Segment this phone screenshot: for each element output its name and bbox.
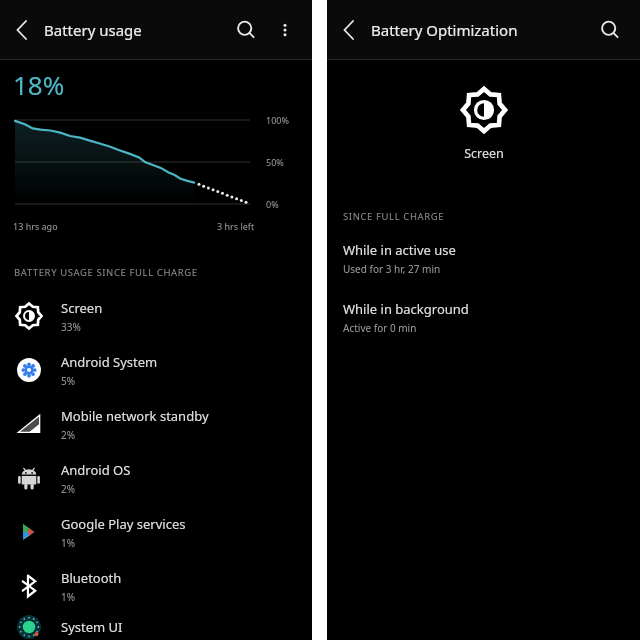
button[interactable]: System UI	[0, 613, 312, 640]
button[interactable]: Android OS	[0, 451, 312, 505]
staticText: 18%	[13, 67, 65, 102]
staticText: 13 hrs ago	[13, 220, 58, 232]
staticText: Battery usage	[44, 20, 142, 40]
staticText: Android OS	[61, 461, 131, 479]
staticText: Bluetooth	[61, 569, 122, 587]
staticText: Mobile network standby	[61, 407, 209, 425]
staticText: 1%	[61, 536, 76, 550]
staticText: 3 hrs left	[217, 220, 255, 232]
button[interactable]: While in active use	[327, 239, 640, 278]
staticText: Battery Optimization	[371, 20, 518, 40]
button[interactable]: Google Play services	[0, 505, 312, 559]
staticText: BATTERY USAGE SINCE FULL CHARGE	[14, 266, 198, 279]
staticText: 2%	[61, 482, 76, 496]
button[interactable]: While in background	[327, 298, 640, 337]
staticText: 0%	[266, 198, 279, 210]
staticText: 5%	[61, 374, 76, 388]
staticText: While in active use	[343, 241, 456, 259]
staticText: Used for 3 hr, 27 min	[343, 262, 441, 276]
button[interactable]: Screen	[0, 289, 312, 343]
staticText: While in background	[343, 300, 469, 318]
staticText: 33%	[61, 320, 81, 334]
staticText: 2%	[61, 428, 76, 442]
button[interactable]: Mobile network standby	[0, 397, 312, 451]
staticText: System UI	[61, 618, 123, 636]
staticText: SINCE FULL CHARGE	[343, 210, 445, 223]
staticText: Android System	[61, 353, 158, 371]
staticText: Screen	[61, 299, 103, 317]
staticText: 100%	[266, 114, 289, 126]
staticText: Screen	[464, 145, 504, 162]
button[interactable]: Search	[588, 8, 632, 52]
staticText: 50%	[266, 156, 284, 168]
button[interactable]: More options	[268, 13, 302, 47]
staticText: Google Play services	[61, 515, 186, 533]
button[interactable]: Bluetooth	[0, 559, 312, 613]
button[interactable]: Back	[327, 8, 371, 52]
button[interactable]: Search	[224, 8, 268, 52]
staticText: 1%	[61, 590, 76, 604]
staticText: Active for 0 min	[343, 321, 417, 335]
button[interactable]: Android System	[0, 343, 312, 397]
button[interactable]: Back	[0, 8, 44, 52]
